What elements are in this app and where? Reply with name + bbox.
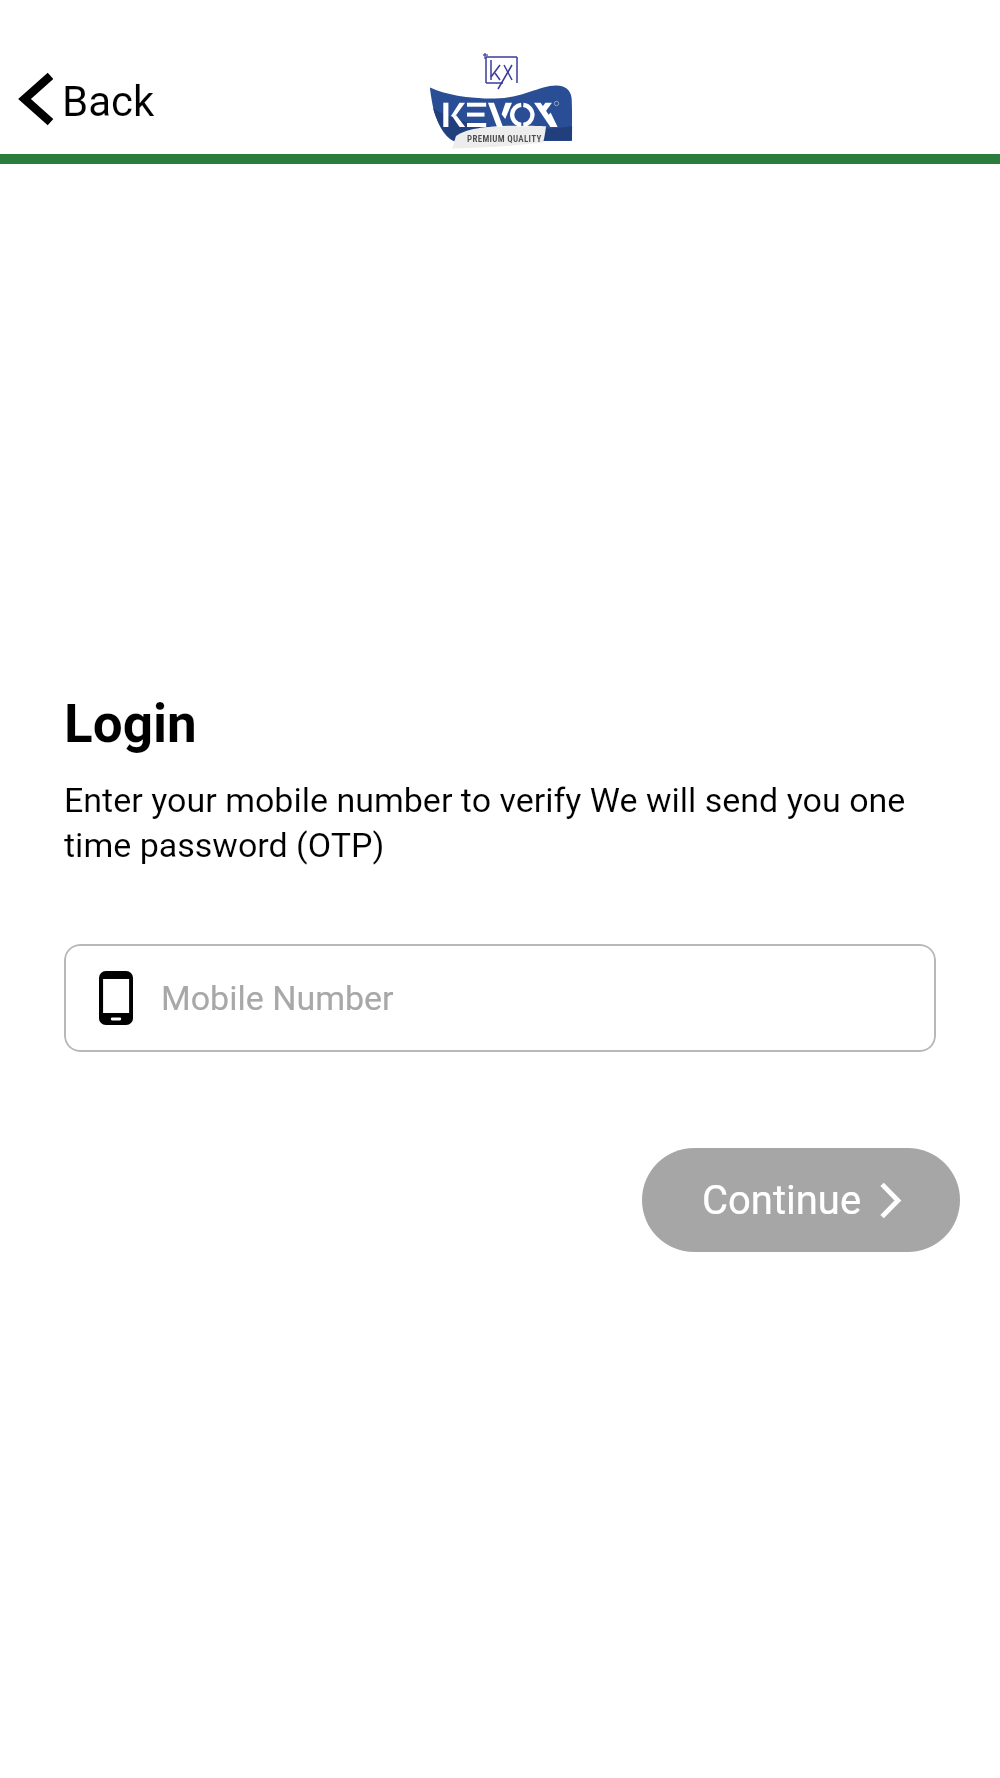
button[interactable]: Back xyxy=(0,65,177,133)
staticText: Enter your mobile number to verify We wi… xyxy=(64,780,936,866)
staticText: Continue xyxy=(702,1177,862,1224)
staticText: Login xyxy=(64,693,197,755)
button[interactable]: Continue xyxy=(642,1148,960,1252)
staticText: PREMIUM QUALITY xyxy=(467,134,542,145)
staticText: Mobile Number xyxy=(161,978,394,1018)
staticText: Back xyxy=(62,77,155,126)
button[interactable]: Mobile Number input xyxy=(64,944,936,1052)
